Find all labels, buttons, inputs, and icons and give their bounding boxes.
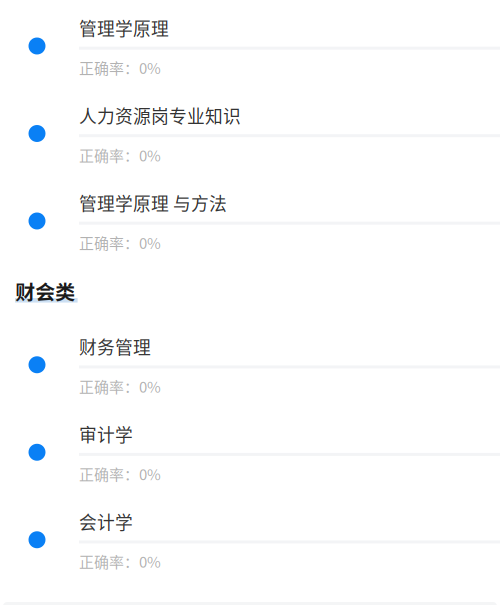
- button[interactable]: 管理学原理 与方法: [0, 177, 500, 265]
- button[interactable]: 审计学: [0, 408, 500, 496]
- staticText: 审计学: [79, 421, 133, 447]
- staticText: 财会类: [15, 276, 75, 305]
- button[interactable]: 会计学: [0, 496, 500, 583]
- staticText: 正确率：0%: [79, 463, 161, 484]
- staticText: 正确率：0%: [79, 232, 161, 253]
- staticText: 管理学原理 与方法: [79, 190, 227, 216]
- staticText: 会计学: [79, 509, 133, 534]
- staticText: 人力资源岗专业知识: [79, 102, 241, 128]
- button[interactable]: 管理学原理: [0, 2, 500, 90]
- staticText: 正确率：0%: [79, 375, 161, 397]
- button[interactable]: 财务管理: [0, 321, 500, 408]
- staticText: 正确率：0%: [79, 57, 161, 78]
- staticText: 管理学原理: [79, 15, 169, 41]
- staticText: 正确率：0%: [79, 144, 161, 166]
- button[interactable]: 人力资源岗专业知识: [0, 90, 500, 177]
- staticText: 财务管理: [79, 334, 151, 359]
- staticText: 正确率：0%: [79, 550, 161, 572]
